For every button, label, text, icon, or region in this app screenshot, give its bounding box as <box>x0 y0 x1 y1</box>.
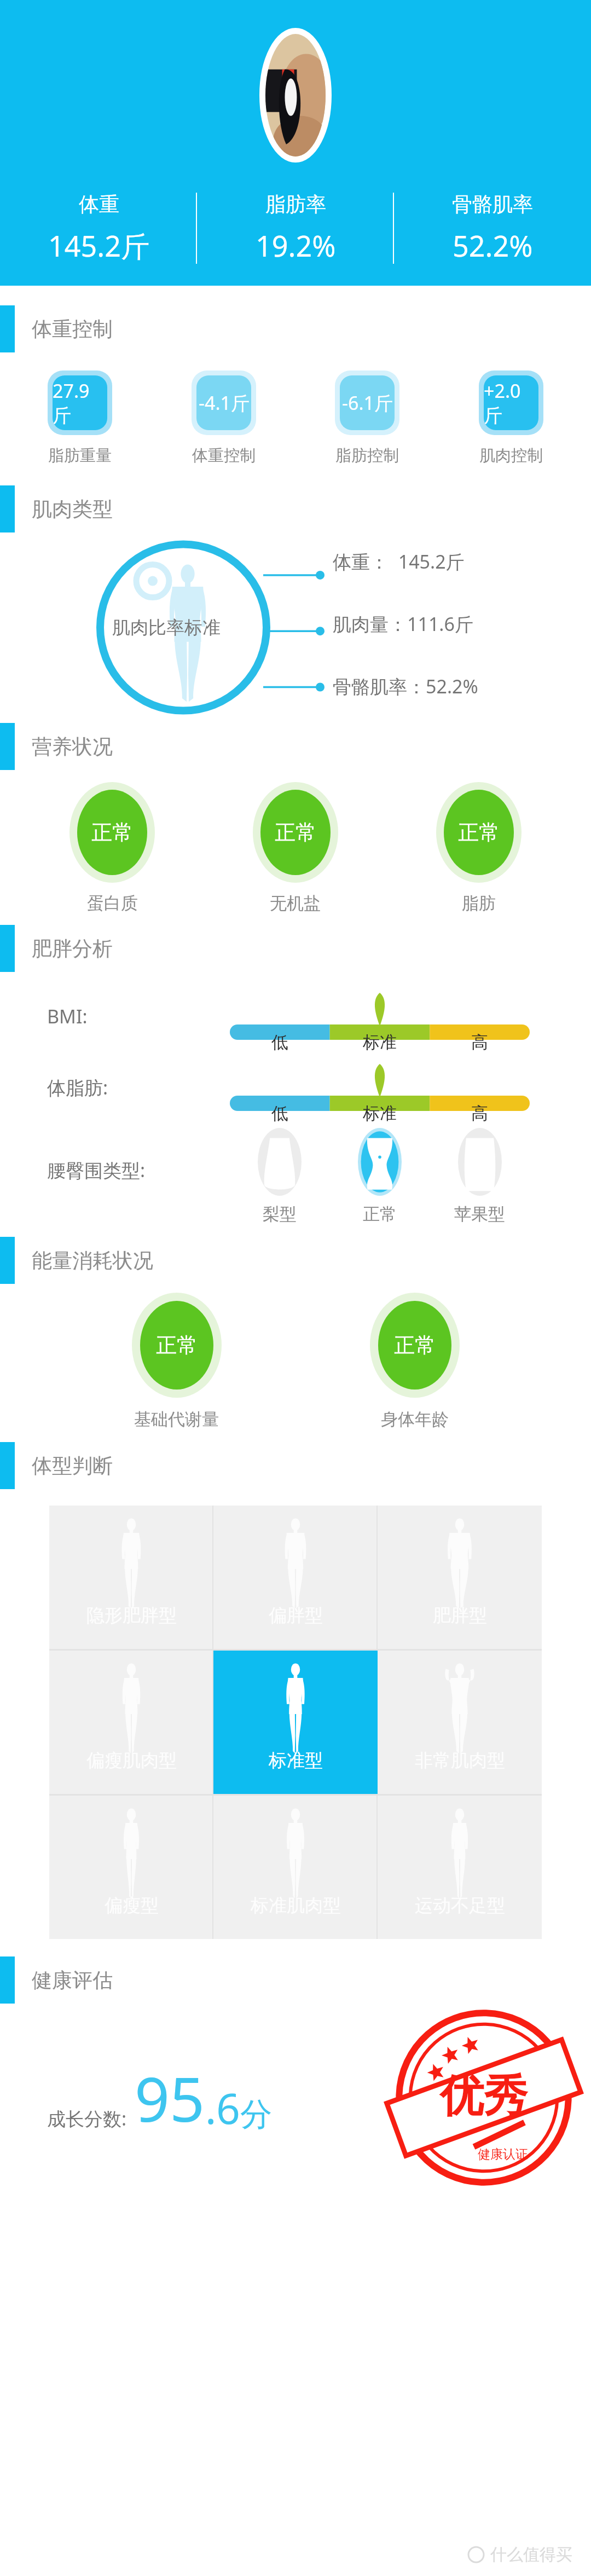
button[interactable]: 正常 <box>296 1293 534 1430</box>
button[interactable]: 27.9斤 <box>22 368 138 466</box>
staticText: 无机盐 <box>270 893 321 914</box>
staticText: 骨骼肌率：52.2% <box>333 674 478 699</box>
staticText: 骨骼肌率 <box>452 192 533 217</box>
staticText: 体重： 145.2斤 <box>333 549 465 574</box>
staticText: 体型判断 <box>32 1453 113 1479</box>
staticText: 标准 <box>363 1103 397 1124</box>
staticText: 偏瘦型 <box>105 1894 159 1917</box>
staticText: 标准 <box>363 1032 397 1053</box>
button[interactable]: 非常肌肉型 <box>378 1651 542 1794</box>
staticText: 非常肌肉型 <box>415 1749 505 1772</box>
button[interactable]: 隐形肥胖型 <box>49 1506 213 1649</box>
staticText: 什么值得买 <box>490 2544 572 2565</box>
staticText: 正常 <box>458 819 500 846</box>
staticText: 高 <box>471 1032 488 1053</box>
other: 优秀 健康认证印章 <box>391 2005 577 2191</box>
staticText: 正常 <box>275 819 316 846</box>
staticText: 能量消耗状况 <box>32 1248 153 1273</box>
staticText: 标准型 <box>269 1749 323 1772</box>
staticText: 正常 <box>394 1332 436 1358</box>
button[interactable]: 肥胖型 <box>378 1506 542 1649</box>
staticText: 肌肉类型 <box>32 496 113 522</box>
staticText: 身体年龄 <box>381 1409 449 1430</box>
staticText: 基础代谢量 <box>134 1409 219 1430</box>
staticText: +2.0斤 <box>484 378 538 427</box>
button[interactable]: 正常 <box>57 1293 296 1430</box>
staticText: 低 <box>271 1032 288 1053</box>
staticText: 正常 <box>363 1203 397 1225</box>
staticText: 偏瘦肌肉型 <box>86 1749 177 1772</box>
staticText: .6 <box>205 2080 240 2137</box>
staticText: 正常 <box>91 819 133 846</box>
staticText: 健康认证 <box>478 2146 528 2162</box>
staticText: 体重控制 <box>192 445 256 466</box>
staticText: 肥胖型 <box>433 1604 487 1627</box>
staticText: 肌肉控制 <box>479 445 543 466</box>
staticText: 高 <box>471 1103 488 1124</box>
staticText: 优秀 <box>440 2069 528 2124</box>
staticText: 成长分数: <box>47 2106 127 2131</box>
staticText: 肌肉比率标准 <box>112 616 221 639</box>
staticText: 苹果型 <box>454 1203 505 1225</box>
staticText: 27.9斤 <box>53 378 107 427</box>
button[interactable]: 苹果型 <box>430 1128 530 1225</box>
staticText: 蛋白质 <box>87 893 138 914</box>
staticText: 正常 <box>156 1332 198 1358</box>
button[interactable]: 偏胖型 <box>213 1506 378 1649</box>
button[interactable]: 正常 <box>387 782 570 914</box>
staticText: 脂肪重量 <box>48 445 112 466</box>
staticText: 标准肌肉型 <box>251 1894 341 1917</box>
button[interactable]: 正常 <box>204 782 387 914</box>
staticText: 健康评估 <box>32 1967 113 1993</box>
button[interactable]: 正常 <box>21 782 204 914</box>
button[interactable]: -6.1斤 <box>309 368 425 466</box>
staticText: -6.1斤 <box>342 390 393 415</box>
staticText: 脂肪控制 <box>335 445 399 466</box>
staticText: -4.1斤 <box>199 390 250 415</box>
button[interactable]: 标准肌肉型 <box>213 1796 378 1939</box>
staticText: 营养状况 <box>32 734 113 760</box>
staticText: 运动不足型 <box>415 1894 505 1917</box>
staticText: 低 <box>271 1103 288 1124</box>
staticText: BMI: <box>47 1004 88 1029</box>
button[interactable]: -4.1斤 <box>166 368 282 466</box>
staticText: 肥胖分析 <box>32 936 113 962</box>
staticText: 19.2% <box>256 226 336 265</box>
staticText: 体重 <box>79 192 119 217</box>
staticText: 脂肪率 <box>265 192 326 217</box>
staticText: 隐形肥胖型 <box>86 1604 177 1627</box>
button[interactable]: 偏瘦肌肉型 <box>49 1651 213 1794</box>
staticText: 脂肪 <box>462 893 496 914</box>
staticText: 145.2斤 <box>48 226 149 265</box>
staticText: 肌肉量：111.6斤 <box>333 611 473 636</box>
staticText: 体重控制 <box>32 316 113 342</box>
staticText: 52.2% <box>453 226 533 265</box>
staticText: 95 <box>135 2056 205 2140</box>
button[interactable]: 梨型 <box>230 1128 329 1225</box>
staticText: 体脂肪: <box>47 1075 108 1100</box>
staticText: 分 <box>240 2094 272 2134</box>
staticText: 腰臀围类型: <box>47 1157 146 1183</box>
staticText: 偏胖型 <box>269 1604 323 1627</box>
button[interactable]: +2.0斤 <box>453 368 569 466</box>
staticText: 梨型 <box>263 1203 297 1225</box>
button[interactable]: 标准型 <box>213 1651 378 1794</box>
button[interactable]: 正常 <box>329 1128 430 1225</box>
